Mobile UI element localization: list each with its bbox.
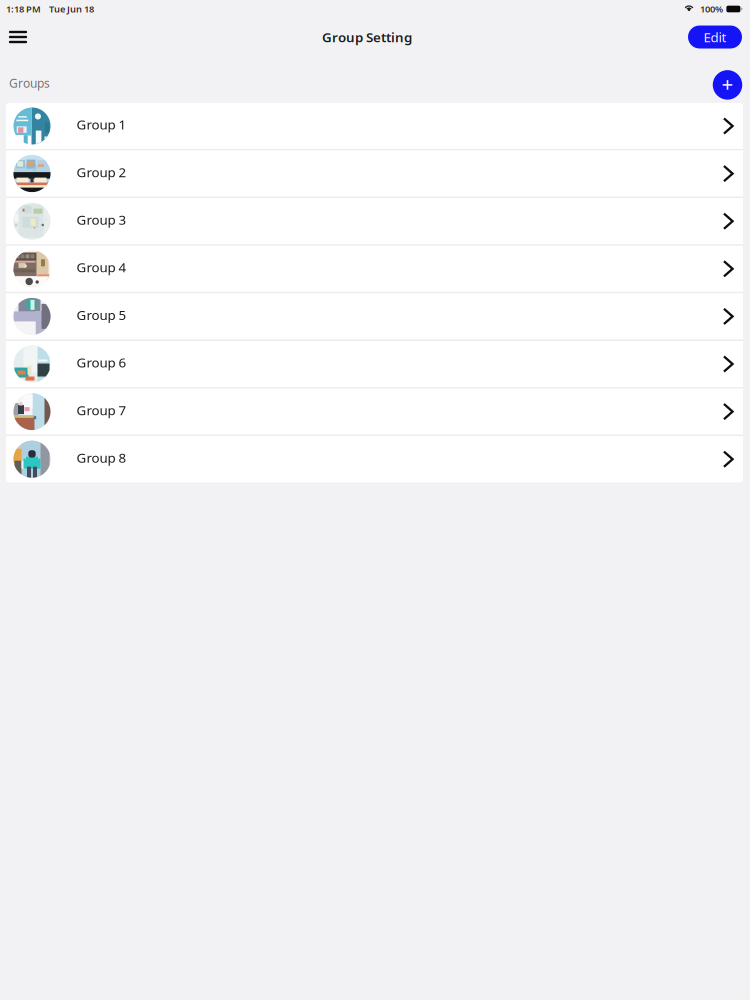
button[interactable]: Add group — [709, 61, 745, 97]
staticText: Groups — [9, 75, 50, 91]
staticText: Tue Jun 18 — [49, 3, 94, 15]
staticText: Group 3 — [76, 211, 126, 228]
staticText: Group Setting — [322, 28, 412, 46]
staticText: 100% — [700, 3, 723, 15]
staticText: Group 4 — [76, 258, 126, 276]
staticText: Group 6 — [76, 353, 126, 371]
button[interactable]: Group 7 — [6, 389, 743, 435]
staticText: Group 7 — [76, 401, 126, 419]
button[interactable]: Group 5 — [6, 293, 743, 339]
button[interactable]: Edit — [688, 25, 742, 48]
button[interactable]: Menu — [5, 24, 31, 50]
staticText: 1:18 PM — [6, 3, 41, 15]
button[interactable]: Group 6 — [6, 341, 743, 387]
staticText: Group 1 — [76, 115, 126, 133]
button[interactable]: Group 1 — [6, 103, 743, 149]
staticText: Group 2 — [76, 163, 126, 181]
staticText: Group 5 — [76, 306, 126, 324]
button[interactable]: Group 3 — [6, 198, 743, 244]
staticText: Group 8 — [76, 449, 126, 466]
button[interactable]: Group 2 — [6, 151, 743, 197]
button[interactable]: Group 8 — [6, 436, 743, 482]
staticText: Edit — [703, 28, 726, 46]
button[interactable]: Group 4 — [6, 246, 743, 292]
